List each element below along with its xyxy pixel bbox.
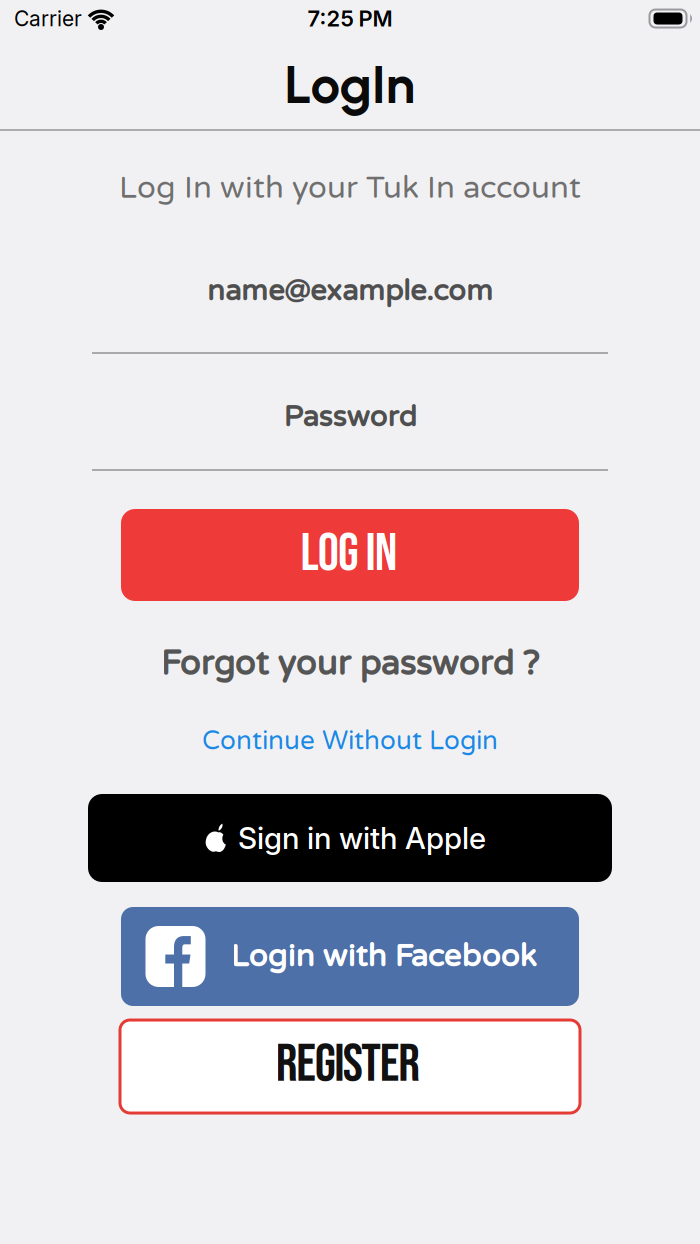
staticText: LogIn [284, 53, 415, 116]
button[interactable]: Forgot your password ? [160, 643, 539, 685]
staticText: Log In with your Tuk In account [119, 169, 581, 207]
button[interactable]: Password [92, 397, 608, 471]
staticText: Login with Facebook [230, 938, 536, 975]
button[interactable]: LOG IN [121, 509, 579, 601]
button[interactable]: Login with Facebook [121, 907, 579, 1006]
staticText: Password [283, 399, 416, 434]
button[interactable]: Sign in with Apple [88, 794, 612, 882]
staticText: Forgot your password ? [160, 643, 539, 684]
staticText: Continue Without Login [202, 725, 498, 757]
staticText: Carrier [14, 6, 82, 31]
staticText: Sign in with Apple [238, 820, 486, 856]
button[interactable]: REGISTER [120, 1020, 580, 1113]
button[interactable]: Continue Without Login [202, 722, 498, 760]
button[interactable]: Email [92, 271, 608, 354]
staticText: name@example.com [207, 273, 493, 308]
staticText: LOG IN [300, 522, 398, 586]
staticText: 7:25 PM [307, 5, 392, 32]
staticText: REGISTER [276, 1032, 420, 1097]
